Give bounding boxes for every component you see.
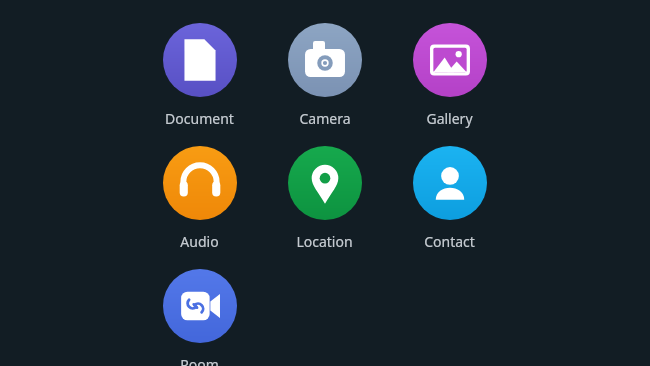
staticText: Location [296,232,353,251]
button[interactable]: Document [137,23,262,128]
button[interactable]: Room [137,269,262,366]
button[interactable]: Gallery [387,23,512,128]
staticText: Audio [180,232,219,251]
staticText: Room [180,355,219,366]
staticText: Document [165,109,234,128]
staticText: Contact [424,232,475,251]
button[interactable]: Location [262,146,387,251]
staticText: Camera [299,109,351,128]
button[interactable]: Camera [262,23,387,128]
staticText: Gallery [426,109,473,128]
button[interactable]: Contact [387,146,512,251]
button[interactable]: Audio [137,146,262,251]
